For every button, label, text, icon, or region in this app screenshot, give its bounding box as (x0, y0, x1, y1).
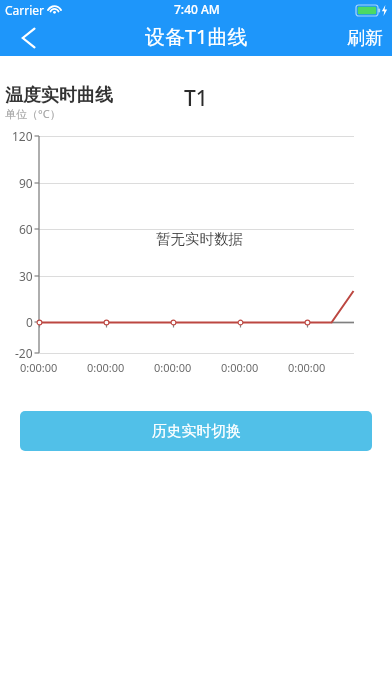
staticText: 0:00:00 (154, 360, 192, 375)
staticText: 90 (19, 175, 33, 191)
staticText: 30 (19, 268, 33, 284)
staticText: Carrier (5, 2, 45, 18)
staticText: 0:00:00 (20, 360, 58, 375)
staticText: 0 (26, 314, 33, 330)
staticText: 温度实时曲线 (5, 84, 113, 107)
staticText: 0:00:00 (221, 360, 259, 375)
staticText: 60 (19, 221, 33, 237)
staticText: 7:40 AM (174, 1, 220, 17)
staticText: T1 (184, 84, 208, 113)
staticText: 单位（°C） (5, 106, 61, 121)
button[interactable]: 历史实时切换 (20, 411, 372, 451)
staticText: 0:00:00 (87, 360, 125, 375)
button[interactable]: 刷新 (347, 27, 383, 50)
staticText: 设备T1曲线 (145, 23, 248, 50)
staticText: 暂无实时数据 (156, 230, 243, 248)
staticText: 120 (12, 128, 33, 144)
staticText: 0:00:00 (288, 360, 326, 375)
button[interactable]: Back (5, 20, 51, 56)
staticText: -20 (15, 345, 33, 361)
staticText: 历史实时切换 (152, 422, 241, 441)
staticText: 刷新 (347, 27, 383, 50)
